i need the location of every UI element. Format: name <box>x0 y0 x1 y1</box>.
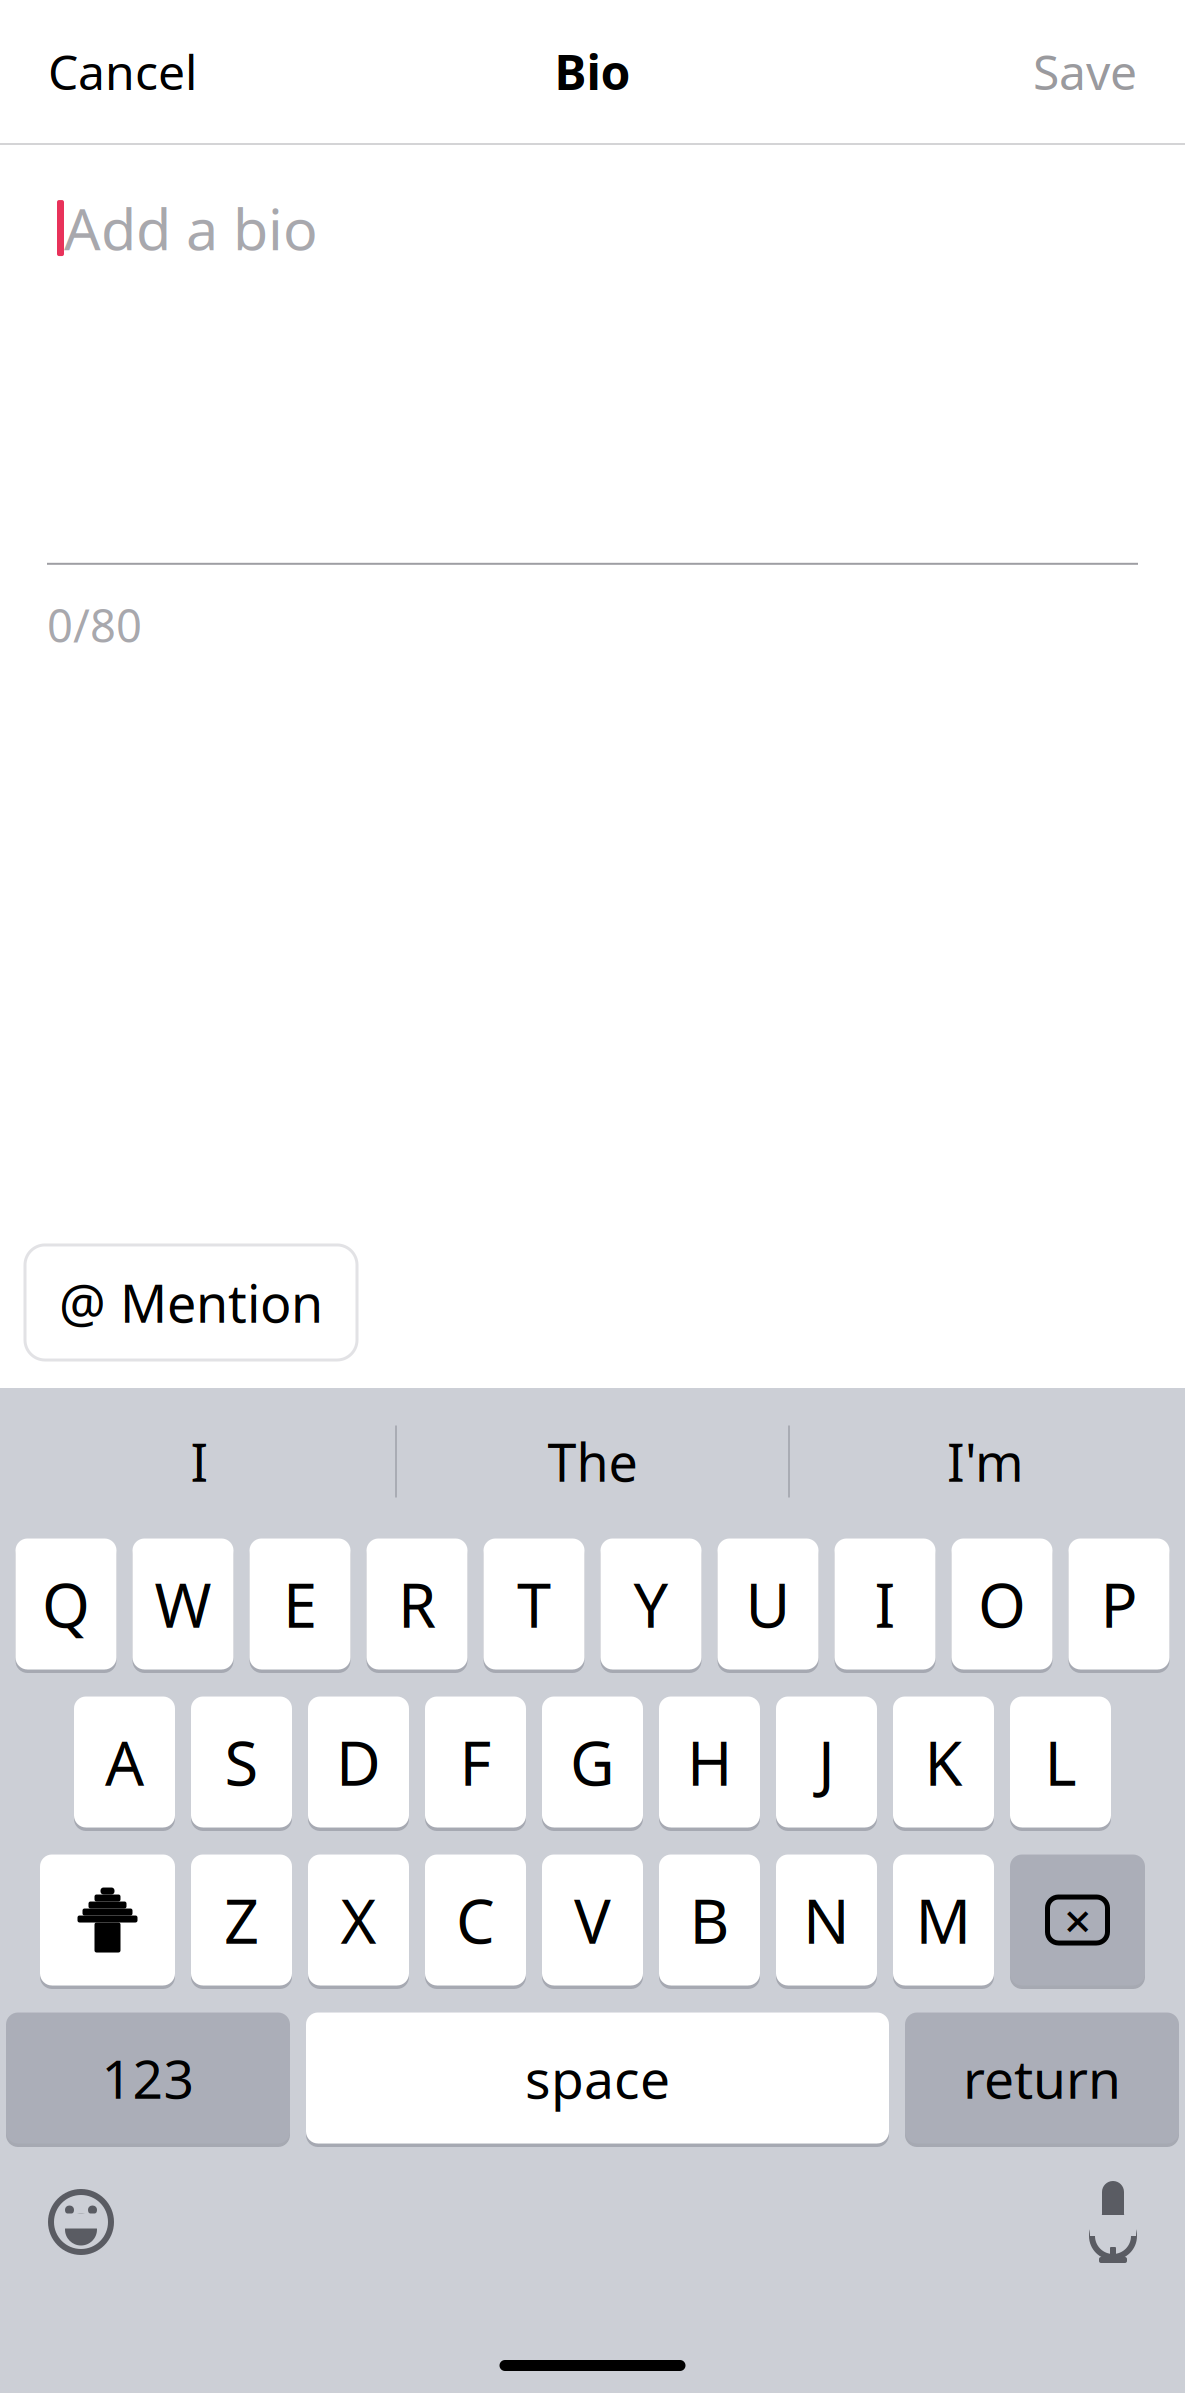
button[interactable]: @ Mention <box>25 1245 357 1360</box>
button[interactable]: A <box>74 1693 175 1831</box>
button[interactable]: T <box>483 1535 584 1673</box>
staticText: G <box>570 1721 615 1803</box>
button[interactable]: Delete <box>1010 1851 1145 1989</box>
button[interactable]: B <box>659 1851 760 1989</box>
button[interactable]: M <box>893 1851 994 1989</box>
button[interactable]: I <box>834 1535 935 1673</box>
staticText: O <box>978 1563 1026 1645</box>
button[interactable]: Y <box>600 1535 701 1673</box>
staticText: × <box>1064 1888 1091 1952</box>
staticText: Add a bio <box>64 190 318 266</box>
button[interactable]: K <box>893 1693 994 1831</box>
staticText: U <box>745 1563 790 1645</box>
staticText: D <box>336 1721 381 1803</box>
button[interactable]: Save <box>1019 22 1151 121</box>
staticText: I <box>190 1427 208 1496</box>
staticText: W <box>154 1563 211 1645</box>
staticText: H <box>687 1721 732 1803</box>
staticText: Save <box>1033 40 1137 103</box>
staticText: R <box>398 1563 436 1645</box>
button[interactable]: H <box>659 1693 760 1831</box>
staticText: B <box>689 1879 729 1961</box>
staticText: A <box>105 1721 144 1803</box>
staticText: F <box>459 1721 491 1803</box>
button[interactable]: Cancel <box>34 22 211 121</box>
staticText: J <box>818 1721 835 1803</box>
button[interactable]: Dictate <box>1089 2181 1137 2263</box>
staticText: 0/80 <box>47 595 142 655</box>
staticText: L <box>1044 1721 1076 1803</box>
button[interactable]: D <box>308 1693 409 1831</box>
staticText: Y <box>633 1563 668 1645</box>
button[interactable]: space <box>306 2009 889 2147</box>
staticText: V <box>574 1879 611 1961</box>
staticText: C <box>456 1879 495 1961</box>
button[interactable]: I'm <box>790 1388 1181 1535</box>
button[interactable]: N <box>776 1851 877 1989</box>
staticText: M <box>915 1879 971 1961</box>
button[interactable]: S <box>191 1693 292 1831</box>
staticText: K <box>924 1721 962 1803</box>
staticText: space <box>525 2043 670 2113</box>
button[interactable]: E <box>249 1535 350 1673</box>
button[interactable]: Q <box>15 1535 116 1673</box>
staticText: The <box>547 1427 637 1496</box>
staticText: I <box>874 1563 895 1645</box>
staticText: 123 <box>101 2043 194 2113</box>
button[interactable]: P <box>1068 1535 1169 1673</box>
button[interactable]: Shift <box>40 1851 175 1989</box>
button[interactable]: U <box>717 1535 818 1673</box>
staticText: Q <box>42 1563 90 1645</box>
button[interactable]: F <box>425 1693 526 1831</box>
button[interactable]: The <box>397 1388 788 1535</box>
staticText: Bio <box>554 40 630 103</box>
button[interactable]: G <box>542 1693 643 1831</box>
button[interactable]: 123 <box>6 2009 290 2147</box>
button[interactable]: C <box>425 1851 526 1989</box>
staticText: N <box>803 1879 850 1961</box>
staticText: E <box>283 1563 317 1645</box>
staticText: P <box>1100 1563 1137 1645</box>
button[interactable]: R <box>366 1535 467 1673</box>
staticText: T <box>517 1563 551 1645</box>
button[interactable]: Emoji <box>48 2189 114 2255</box>
button[interactable]: return <box>905 2009 1179 2147</box>
button[interactable]: Z <box>191 1851 292 1989</box>
button[interactable]: X <box>308 1851 409 1989</box>
button[interactable]: W <box>132 1535 233 1673</box>
button[interactable]: L <box>1010 1693 1111 1831</box>
button[interactable]: O <box>951 1535 1052 1673</box>
staticText: Z <box>224 1879 259 1961</box>
button[interactable]: I <box>4 1388 395 1535</box>
button[interactable]: V <box>542 1851 643 1989</box>
staticText: return <box>963 2043 1121 2113</box>
staticText: X <box>340 1879 376 1961</box>
staticText: Cancel <box>48 40 197 103</box>
staticText: S <box>224 1721 258 1803</box>
staticText: I'm <box>947 1427 1024 1496</box>
button[interactable]: J <box>776 1693 877 1831</box>
staticText: @ Mention <box>59 1268 323 1337</box>
